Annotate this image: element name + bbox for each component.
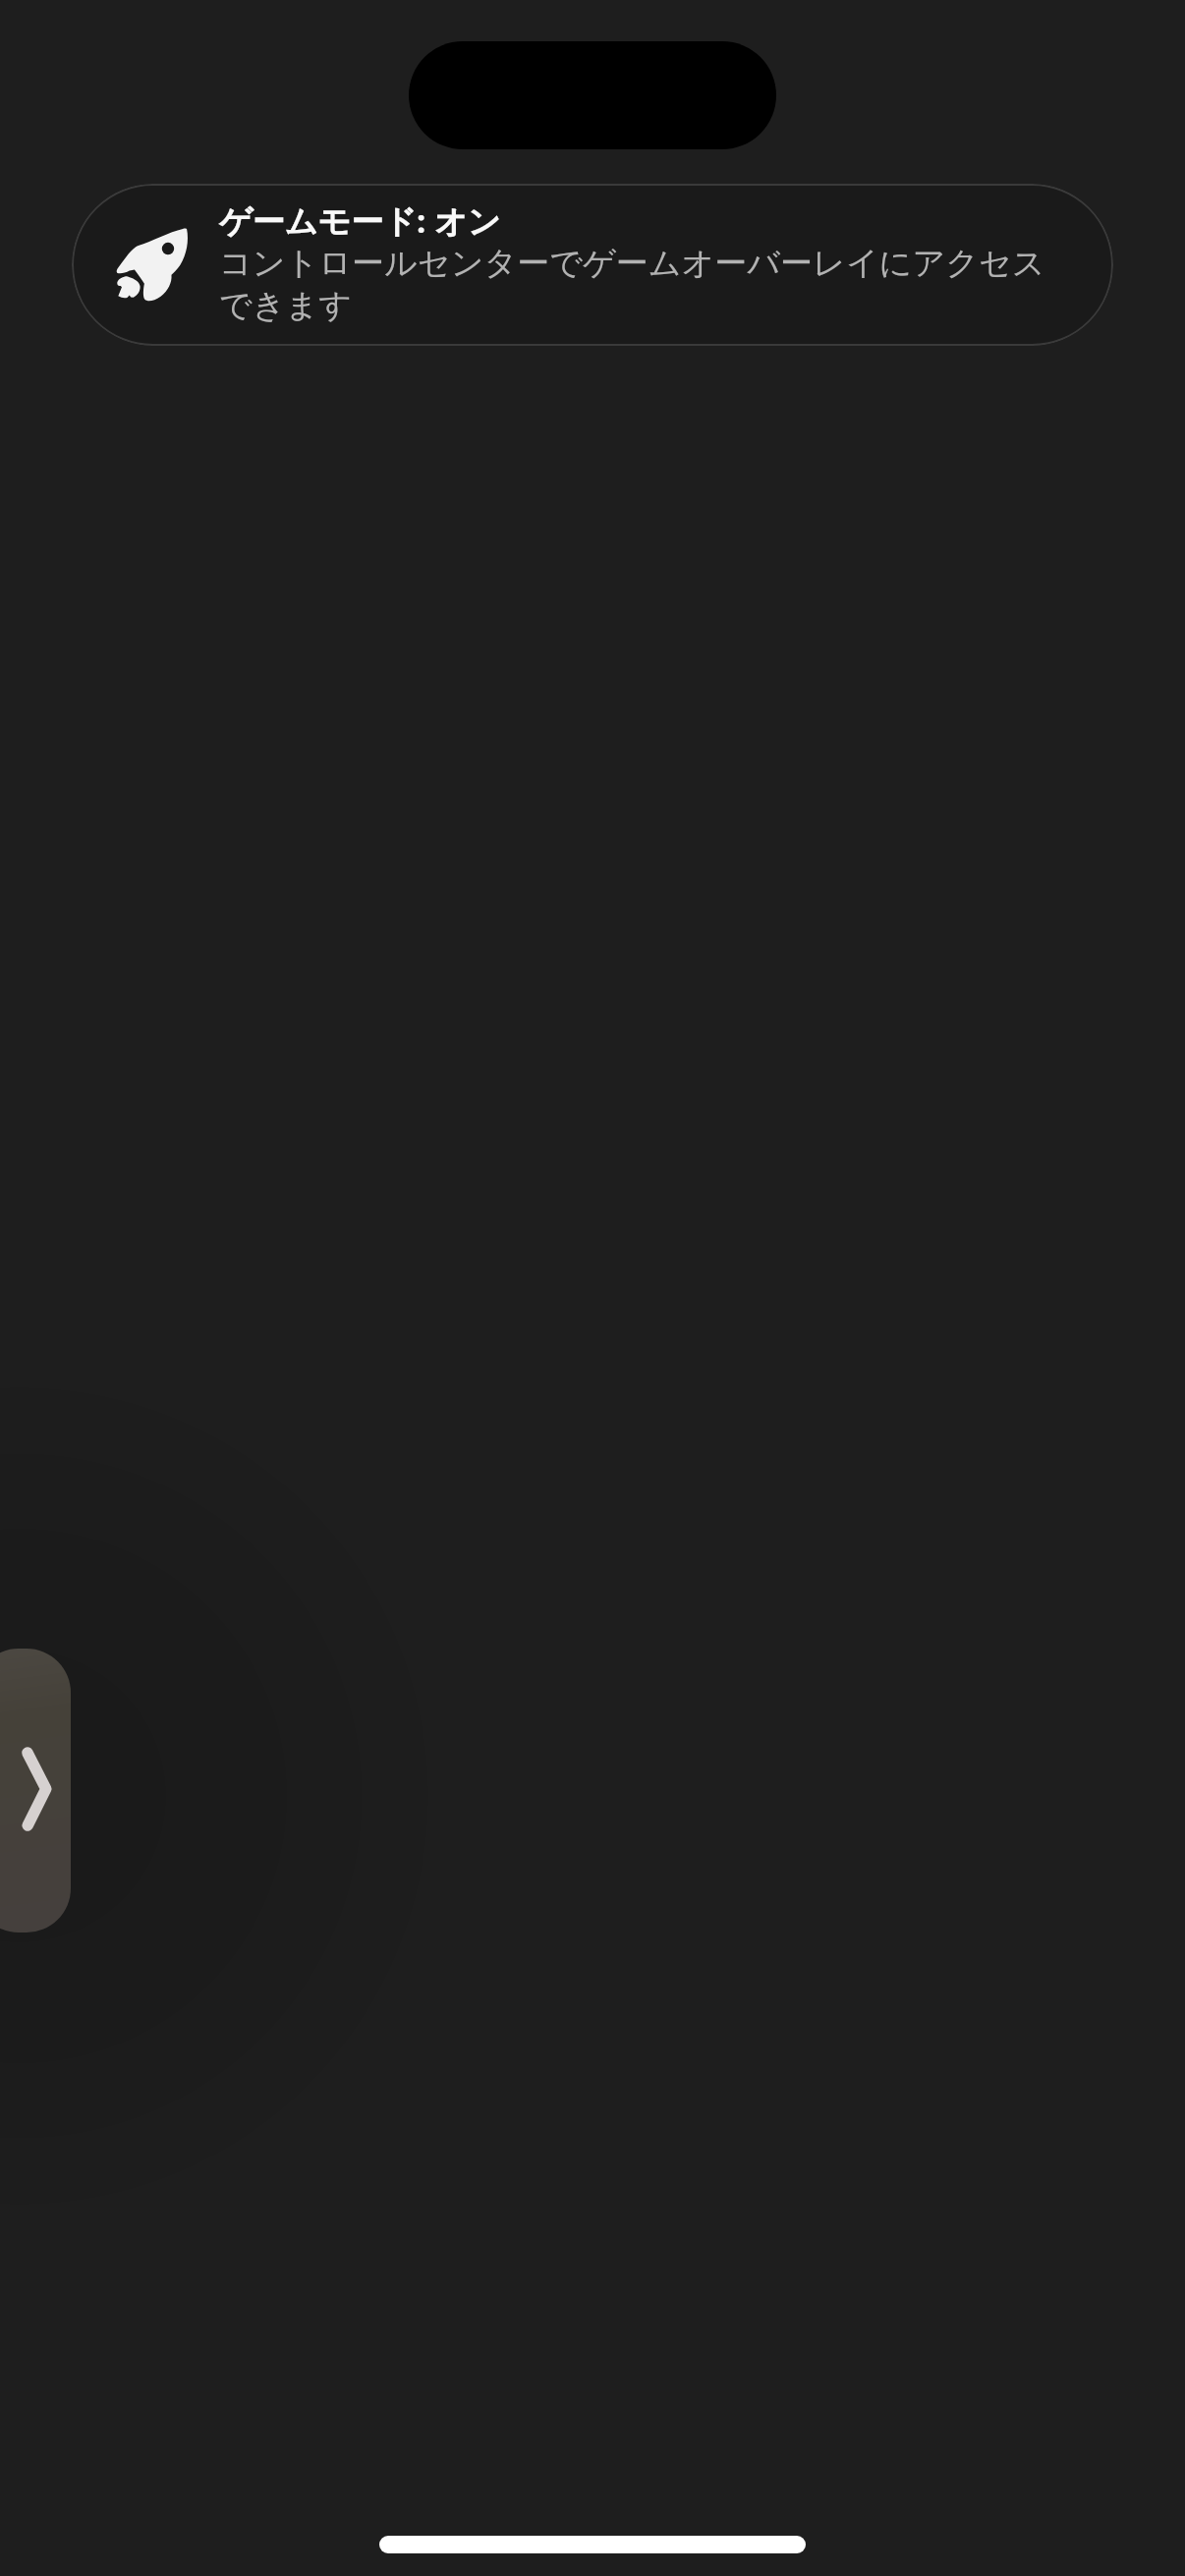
button[interactable]: Open side panel (0, 1649, 71, 1932)
staticText: コントロールセンターでゲームオーバーレイにアクセスできます (219, 243, 1059, 326)
staticText: ゲームモード: オン (219, 198, 501, 243)
button[interactable]: ゲームモード: オン (72, 184, 1113, 346)
